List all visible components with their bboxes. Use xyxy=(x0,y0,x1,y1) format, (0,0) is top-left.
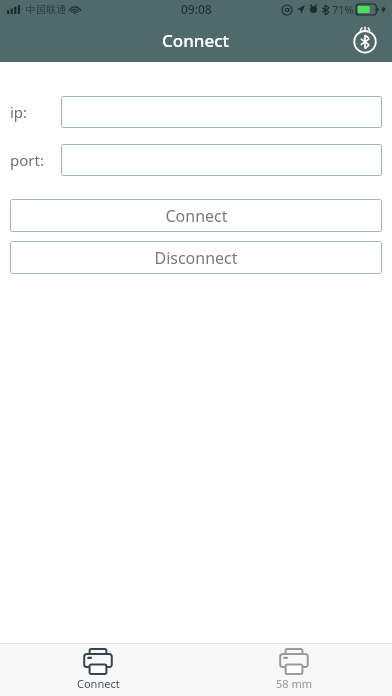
staticText: port: xyxy=(10,150,44,170)
button[interactable]: Connect xyxy=(10,199,382,232)
staticText: Connect xyxy=(77,676,120,691)
button[interactable]: Disconnect xyxy=(10,241,382,274)
button[interactable] xyxy=(61,96,382,128)
button[interactable]: Bluetooth scan xyxy=(348,23,382,57)
button[interactable]: 58 mm xyxy=(196,644,392,696)
staticText: Disconnect xyxy=(154,247,238,269)
staticText: Connect xyxy=(162,29,230,52)
button[interactable]: Connect xyxy=(0,644,196,696)
staticText: Connect xyxy=(165,205,228,227)
staticText: 58 mm xyxy=(276,676,313,691)
button[interactable] xyxy=(61,144,382,176)
staticText: 中国联通 xyxy=(26,3,66,16)
staticText: 09:08 xyxy=(181,1,212,17)
staticText: 71% xyxy=(332,2,354,17)
staticText: ip: xyxy=(10,102,28,122)
